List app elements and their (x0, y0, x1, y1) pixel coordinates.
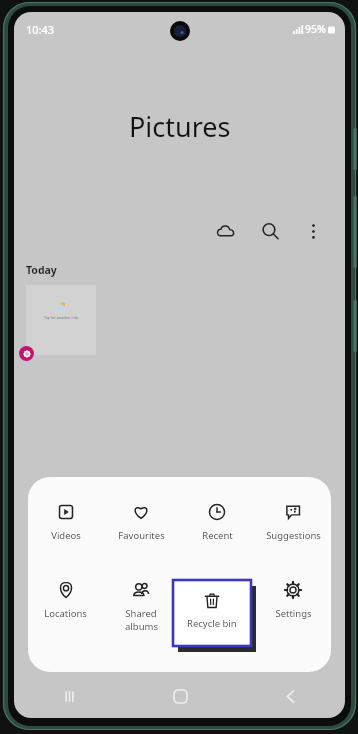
button[interactable]: Locations (28, 577, 103, 651)
staticText: Favourites (118, 529, 165, 542)
button[interactable]: Suggestions (255, 499, 331, 565)
button[interactable]: Videos (28, 499, 103, 565)
button[interactable]: More options (295, 213, 331, 249)
staticText: Settings (275, 607, 312, 620)
staticText: Recent (202, 529, 233, 542)
button[interactable]: Home (125, 674, 235, 718)
staticText: Suggestions (266, 529, 321, 542)
button[interactable]: Recent (179, 499, 255, 565)
staticText: Locations (44, 607, 87, 620)
staticText: Pictures (129, 108, 231, 145)
staticText: albums (125, 620, 158, 633)
button[interactable]: Weather widget photo (26, 285, 96, 355)
button[interactable]: Favourites (103, 499, 179, 565)
staticText: Shared (125, 607, 157, 620)
staticText: Today (26, 263, 57, 277)
staticText: Tap for weather info (44, 315, 79, 320)
button[interactable]: Widget badge (19, 346, 34, 361)
button[interactable]: Search (252, 213, 288, 249)
button[interactable]: Shared (103, 577, 179, 651)
staticText: Recycle bin (187, 617, 237, 630)
button[interactable]: Back (235, 674, 345, 718)
button[interactable]: Settings (255, 577, 331, 651)
button[interactable]: Recycle bin (173, 580, 251, 646)
staticText: 95% (305, 22, 326, 36)
staticText: 10:43 (26, 22, 55, 37)
button[interactable]: Cloud sync (207, 213, 243, 249)
staticText: Videos (51, 529, 81, 542)
button[interactable]: Recent apps (14, 674, 125, 718)
